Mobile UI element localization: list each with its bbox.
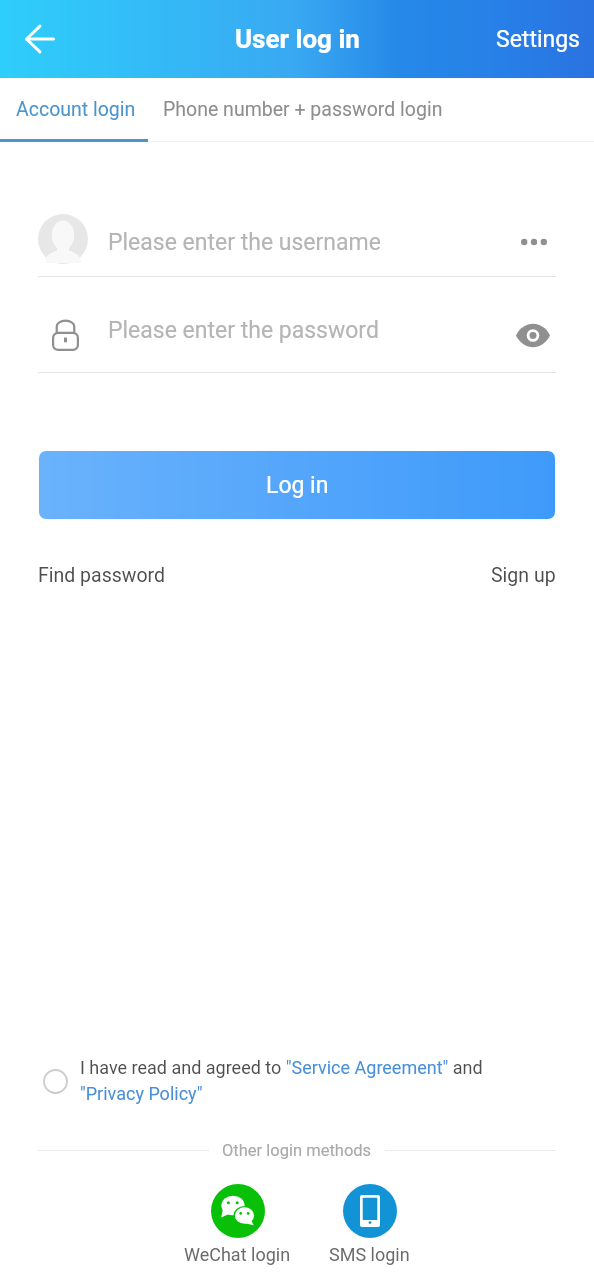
button[interactable]: Log in [39,451,555,519]
button[interactable]: Phone number + password login [152,84,459,139]
staticText: Find password [38,564,166,587]
button[interactable]: Settings [478,12,594,67]
button[interactable]: Back [15,14,65,64]
button[interactable]: SMS login [310,1180,429,1269]
staticText: Account login [16,98,136,121]
staticText: Please enter the password [108,317,518,344]
staticText: Settings [496,26,580,53]
staticText: Log in [266,472,329,499]
button[interactable]: Show password [518,308,556,346]
button[interactable]: Agree to terms [38,1064,72,1098]
staticText: Please enter the username [108,229,518,256]
staticText: User log in [235,24,360,54]
staticText: Sign up [491,564,556,587]
button[interactable]: Sign up [491,560,556,591]
button[interactable]: More options [518,220,556,258]
button[interactable]: WeChat login [165,1180,310,1269]
staticText: Phone number + password login [163,98,443,121]
staticText: Other login methods [222,1141,372,1160]
button[interactable]: Account login [0,84,152,139]
staticText: SMS login [329,1244,410,1265]
staticText: I have read and agreed to "Service Agree… [80,1057,500,1104]
staticText: WeChat login [184,1244,291,1265]
button[interactable]: Find password [38,560,166,591]
